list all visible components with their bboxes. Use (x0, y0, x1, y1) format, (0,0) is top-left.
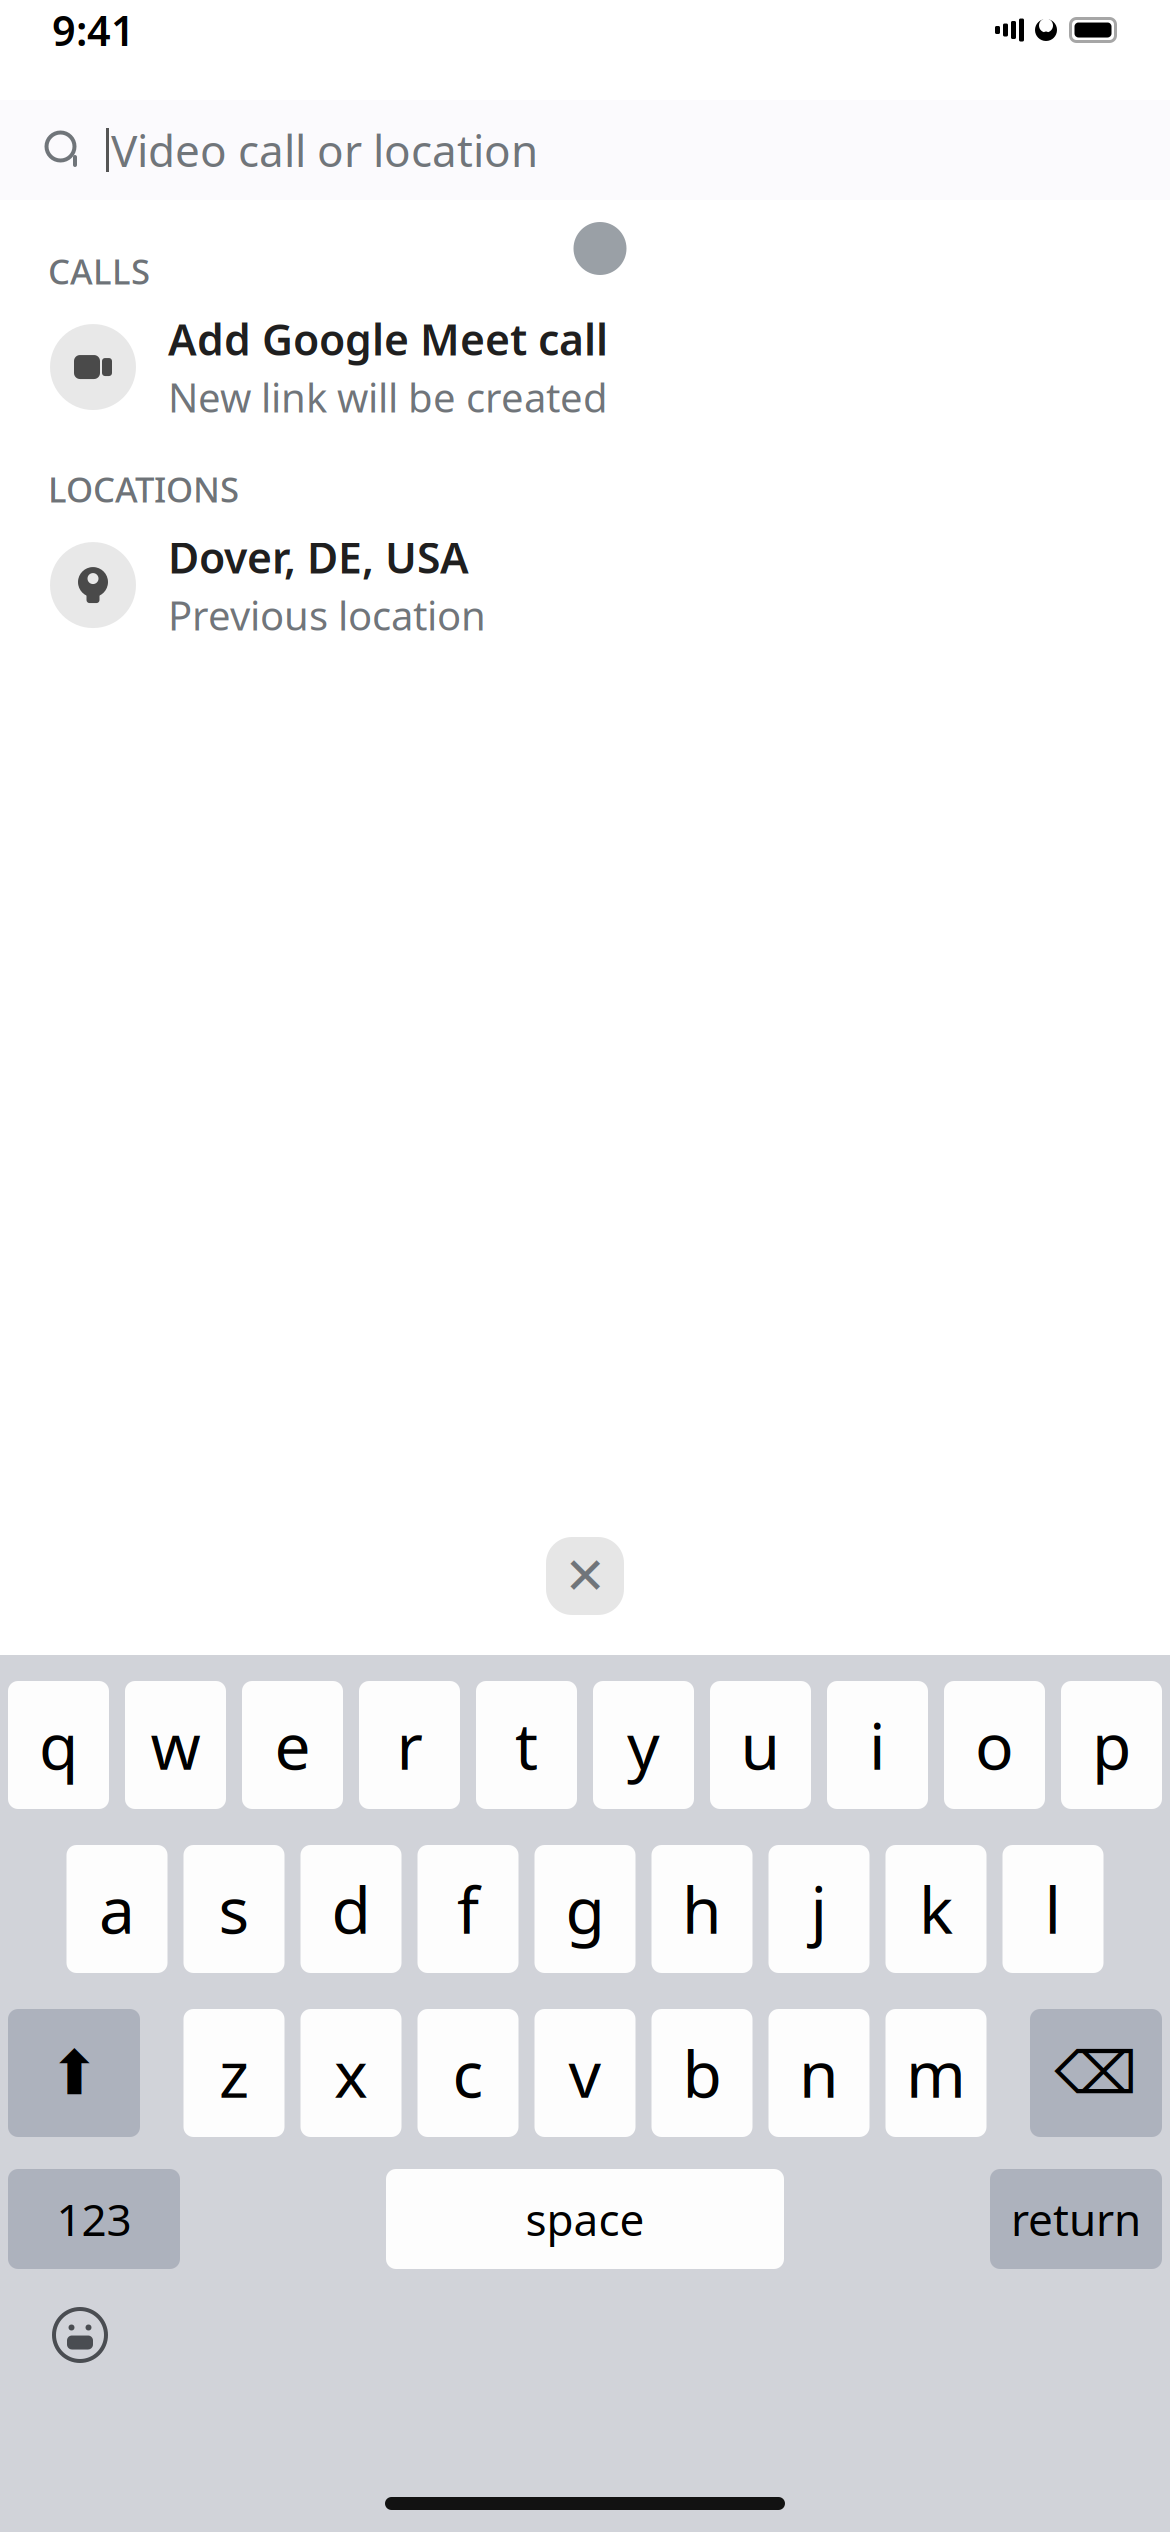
button[interactable]: 123 (8, 2169, 180, 2269)
button[interactable]: c (417, 2009, 518, 2137)
staticText: i (869, 1702, 886, 1787)
button[interactable]: y (593, 1681, 694, 1809)
button[interactable]: w (125, 1681, 226, 1809)
button[interactable]: space (386, 2169, 784, 2269)
button[interactable]: s (183, 1845, 284, 1973)
button[interactable]: k (885, 1845, 986, 1973)
staticText: LOCATIONS (48, 466, 239, 512)
staticText: k (919, 1866, 953, 1951)
staticText: m (906, 2030, 966, 2115)
button[interactable]: n (768, 2009, 869, 2137)
button[interactable]: i (827, 1681, 928, 1809)
button[interactable]: u (710, 1681, 811, 1809)
staticText: j (810, 1866, 827, 1951)
staticText: x (334, 2030, 368, 2115)
staticText: c (452, 2030, 483, 2115)
button[interactable]: Dover, DE, USA (0, 530, 1170, 640)
staticText: l (1044, 1866, 1061, 1951)
button[interactable]: d (300, 1845, 401, 1973)
button[interactable]: Delete (1030, 2009, 1162, 2137)
staticText: CALLS (48, 248, 150, 294)
button[interactable]: return (990, 2169, 1162, 2269)
staticText: space (525, 2190, 644, 2248)
staticText: g (565, 1866, 604, 1951)
button[interactable]: b (651, 2009, 752, 2137)
button[interactable]: l (1002, 1845, 1103, 1973)
staticText: Video call or location (111, 121, 538, 179)
staticText: t (515, 1702, 538, 1787)
button[interactable]: f (417, 1845, 518, 1973)
staticText: 9:41 (52, 3, 135, 57)
staticText: y (627, 1702, 660, 1787)
button[interactable]: e (242, 1681, 343, 1809)
staticText: u (740, 1702, 780, 1787)
button[interactable]: v (534, 2009, 635, 2137)
button[interactable]: Add Google Meet call (0, 312, 1170, 422)
staticText: ⬆ (48, 2038, 99, 2108)
staticText: return (1011, 2190, 1141, 2248)
staticText: Previous location (168, 588, 486, 641)
staticText: p (1092, 1702, 1131, 1787)
staticText: d (331, 1866, 370, 1951)
button[interactable]: j (768, 1845, 869, 1973)
staticText: Add Google Meet call (168, 311, 608, 367)
staticText: 123 (56, 2190, 131, 2248)
staticText: v (568, 2030, 601, 2115)
staticText: z (219, 2030, 249, 2115)
staticText: b (682, 2030, 721, 2115)
button[interactable]: x (300, 2009, 401, 2137)
button[interactable]: z (183, 2009, 284, 2137)
button[interactable]: r (359, 1681, 460, 1809)
staticText: o (975, 1702, 1014, 1787)
button[interactable]: Close (546, 1537, 624, 1615)
button[interactable]: Video call or location (0, 100, 1170, 200)
staticText: w (150, 1702, 200, 1787)
staticText: h (682, 1866, 722, 1951)
button[interactable]: g (534, 1845, 635, 1973)
staticText: f (457, 1866, 479, 1951)
button[interactable]: a (66, 1845, 167, 1973)
staticText: Dover, DE, USA (168, 529, 469, 585)
staticText: e (274, 1702, 310, 1787)
button[interactable]: Emoji (50, 2305, 110, 2365)
staticText: q (39, 1702, 78, 1787)
button[interactable]: t (476, 1681, 577, 1809)
button[interactable]: q (8, 1681, 109, 1809)
staticText: n (799, 2030, 839, 2115)
staticText: a (99, 1866, 135, 1951)
staticText: New link will be created (168, 370, 608, 423)
button[interactable]: h (651, 1845, 752, 1973)
staticText: ✕ (564, 1547, 606, 1605)
button[interactable]: o (944, 1681, 1045, 1809)
button[interactable]: m (885, 2009, 986, 2137)
staticText: s (218, 1866, 249, 1951)
staticText: ⌫ (1054, 2040, 1137, 2106)
button[interactable]: Shift (8, 2009, 140, 2137)
staticText: r (396, 1702, 422, 1787)
button[interactable]: p (1061, 1681, 1162, 1809)
